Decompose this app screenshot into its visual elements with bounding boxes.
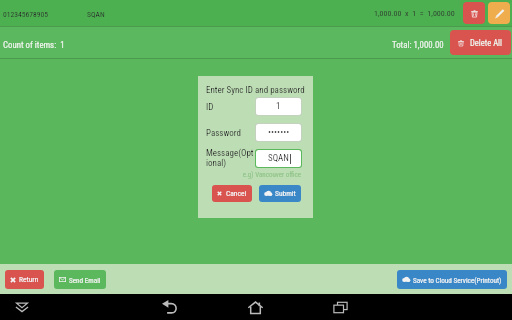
button[interactable]: 1 xyxy=(256,98,301,115)
staticText: Submit xyxy=(275,189,296,198)
staticText: Count of items: 1 xyxy=(3,40,65,50)
staticText: Enter Sync ID and password xyxy=(206,85,305,96)
staticText: Save to Cloud Service(Printout) xyxy=(413,276,502,284)
staticText: Password xyxy=(206,128,241,139)
button[interactable]: Cancel xyxy=(212,185,252,202)
button[interactable]: Recents xyxy=(328,295,352,319)
button[interactable]: Delete xyxy=(463,2,485,24)
staticText: 012345678905 xyxy=(3,10,48,19)
staticText: ••••••• xyxy=(268,127,290,138)
staticText: e.g) Vancouver office xyxy=(242,171,301,179)
staticText: Delete All xyxy=(470,38,503,48)
button[interactable]: ••••••• xyxy=(256,124,301,141)
button[interactable]: Home xyxy=(243,295,267,319)
button[interactable]: Back xyxy=(158,295,182,319)
button[interactable]: Submit xyxy=(259,185,301,202)
button[interactable]: Hide keyboard xyxy=(12,297,32,317)
button[interactable]: Save to Cloud Service(Printout) xyxy=(397,270,507,289)
staticText: Cancel xyxy=(226,189,247,198)
staticText: Return xyxy=(19,275,39,284)
staticText: Message(Opt ional) xyxy=(206,148,254,168)
button[interactable]: Delete All xyxy=(450,30,511,55)
staticText: Total: 1,000.00 xyxy=(392,40,444,50)
staticText: 1,000.00 x 1 = 1,000.00 xyxy=(374,9,455,18)
staticText: ID xyxy=(206,102,214,113)
staticText: SQAN xyxy=(87,10,105,19)
button[interactable]: Return xyxy=(5,270,44,289)
button[interactable]: SQAN xyxy=(256,150,301,167)
staticText: 1 xyxy=(276,101,281,112)
staticText: Send Email xyxy=(69,276,101,284)
button[interactable]: Edit xyxy=(488,2,510,24)
staticText: SQAN xyxy=(268,153,289,164)
button[interactable]: Send Email xyxy=(54,270,106,289)
